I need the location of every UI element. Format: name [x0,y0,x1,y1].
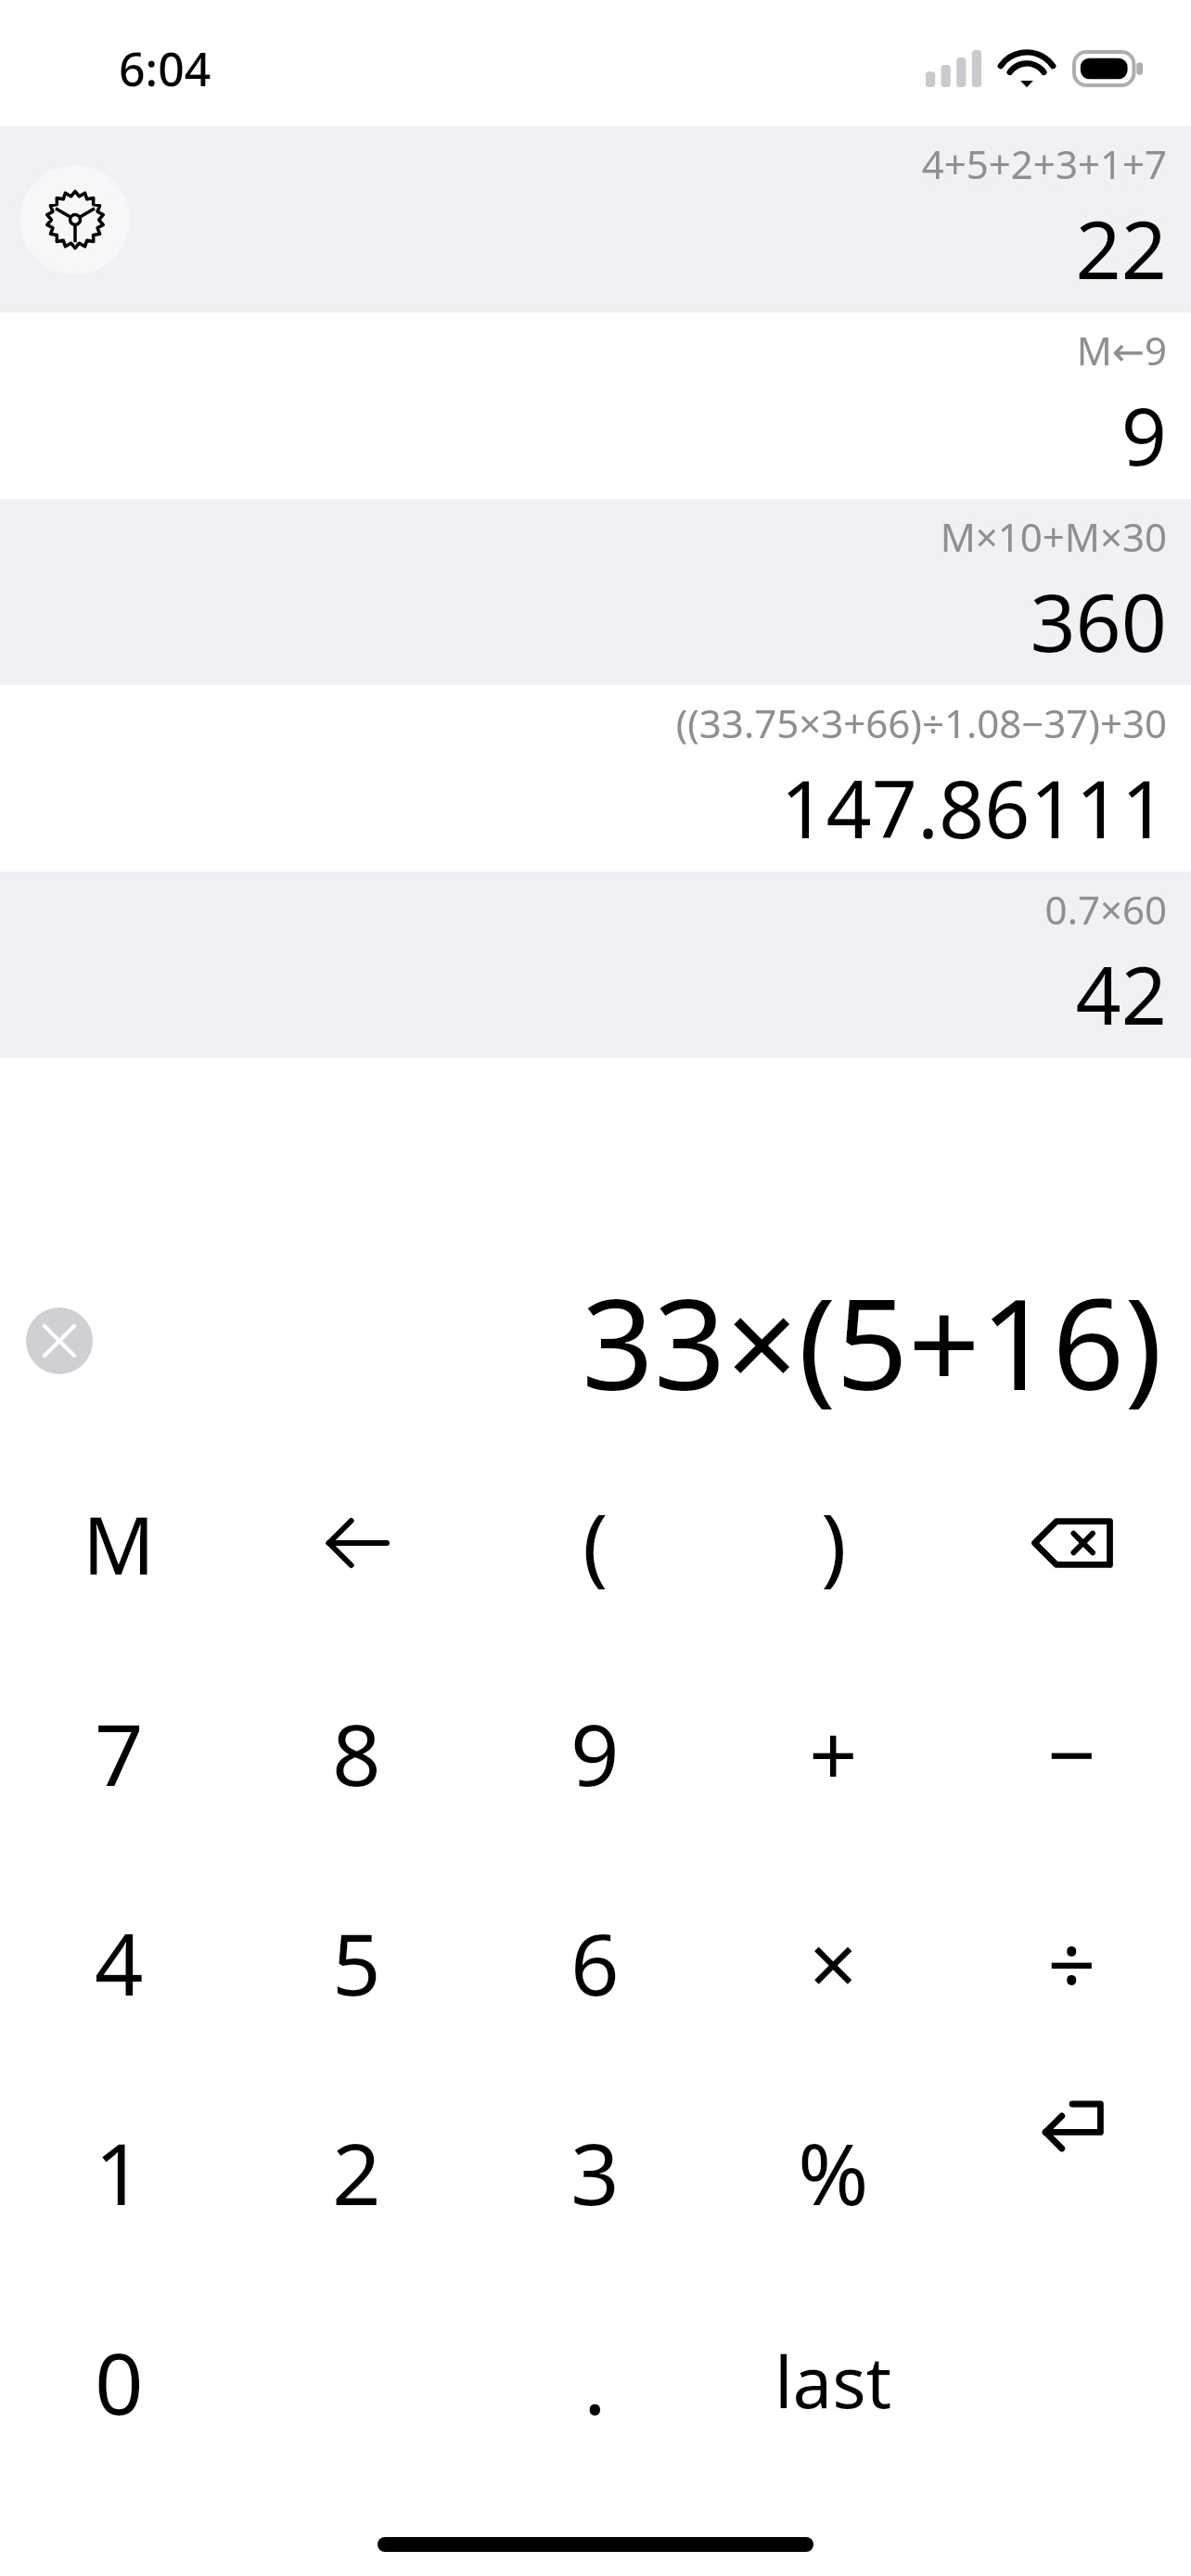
staticText: 5 [332,1905,381,2021]
staticText: 360 [1030,567,1167,675]
button[interactable]: 9 [476,1648,714,1857]
button[interactable]: M [0,1438,237,1648]
button[interactable]: Settings [0,126,1191,312]
button[interactable]: × [714,1857,953,2067]
button[interactable]: 6 [476,1857,714,2067]
button[interactable]: − [953,1648,1191,1857]
button[interactable]: ((33.75×3+66)÷1.08−37)+30 [0,685,1191,872]
staticText: 9 [570,1695,620,1811]
staticText: 0.7×60 [1044,883,1167,936]
staticText: 42 [1075,939,1167,1048]
button[interactable]: 4 [0,1857,237,2067]
staticText: M [83,1489,156,1598]
staticText: 22 [1075,194,1167,302]
staticText: 3 [570,2114,620,2230]
staticText: ((33.75×3+66)÷1.08−37)+30 [675,696,1167,749]
staticText: 8 [332,1695,381,1811]
staticText: 4 [95,1905,144,2021]
button[interactable]: 8 [237,1648,476,1857]
button[interactable]: ÷ [953,1857,1191,2067]
button[interactable]: 0.7×60 [0,872,1191,1058]
button[interactable]: Backspace [953,1438,1191,1648]
staticText: 4+5+2+3+1+7 [921,137,1167,190]
staticText: × [809,1905,858,2021]
button[interactable]: . [476,2276,714,2486]
button[interactable]: 2 [237,2067,476,2276]
staticText: 33×(5+16) [582,1256,1163,1427]
button[interactable]: 3 [476,2067,714,2276]
staticText: + [809,1695,858,1811]
button[interactable]: last [714,2276,953,2486]
button[interactable]: Settings [20,165,130,274]
button[interactable]: M←9 [0,312,1191,499]
button[interactable]: + [714,1648,953,1857]
button[interactable]: Equals [953,2067,1191,2276]
button[interactable]: 1 [0,2067,237,2276]
staticText: last [775,2333,892,2429]
button[interactable]: ) [714,1438,953,1648]
staticText: ÷ [1047,1905,1096,2021]
staticText: M←9 [1076,324,1167,376]
staticText: % [798,2114,869,2230]
button[interactable]: ( [476,1438,714,1648]
staticText: M×10+M×30 [940,510,1167,563]
staticText: 7 [95,1695,144,1811]
staticText: 147.86111 [780,753,1167,861]
button[interactable]: Clear [26,1307,93,1374]
staticText: ( [583,1486,608,1601]
button[interactable]: M×10+M×30 [0,499,1191,685]
staticText: 2 [332,2114,381,2230]
button[interactable]: Memory recall [237,1438,476,1648]
button[interactable]: 7 [0,1648,237,1857]
staticText: ) [821,1486,847,1601]
staticText: 0 [95,2324,144,2440]
button[interactable]: 0 [0,2276,237,2486]
staticText: − [1047,1695,1096,1811]
button[interactable]: 5 [237,1857,476,2067]
staticText: 9 [1121,380,1167,489]
button[interactable]: % [714,2067,953,2276]
staticText: . [583,2324,607,2440]
staticText: 6 [570,1905,620,2021]
staticText: 6:04 [119,37,211,100]
staticText: 1 [95,2114,144,2230]
